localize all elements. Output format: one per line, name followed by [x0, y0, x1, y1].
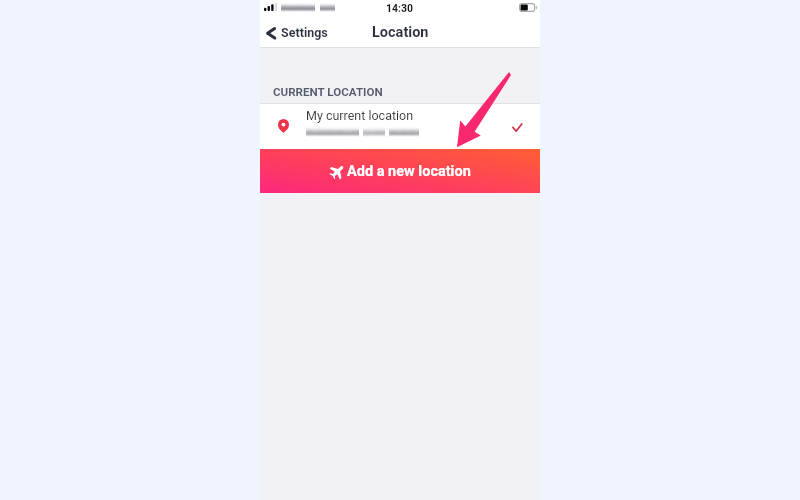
staticText: Settings [281, 25, 328, 40]
staticText: My current location [306, 108, 414, 123]
button[interactable]: My current location [260, 104, 540, 149]
staticText: 14:30 [386, 2, 414, 14]
staticText: CURRENT LOCATION [273, 85, 383, 99]
button[interactable]: Settings [260, 22, 336, 43]
other: Selected location [512, 124, 523, 133]
staticText: Add a new location [347, 163, 471, 180]
button[interactable]: Add a new location [260, 149, 540, 193]
staticText: Location [372, 24, 429, 41]
